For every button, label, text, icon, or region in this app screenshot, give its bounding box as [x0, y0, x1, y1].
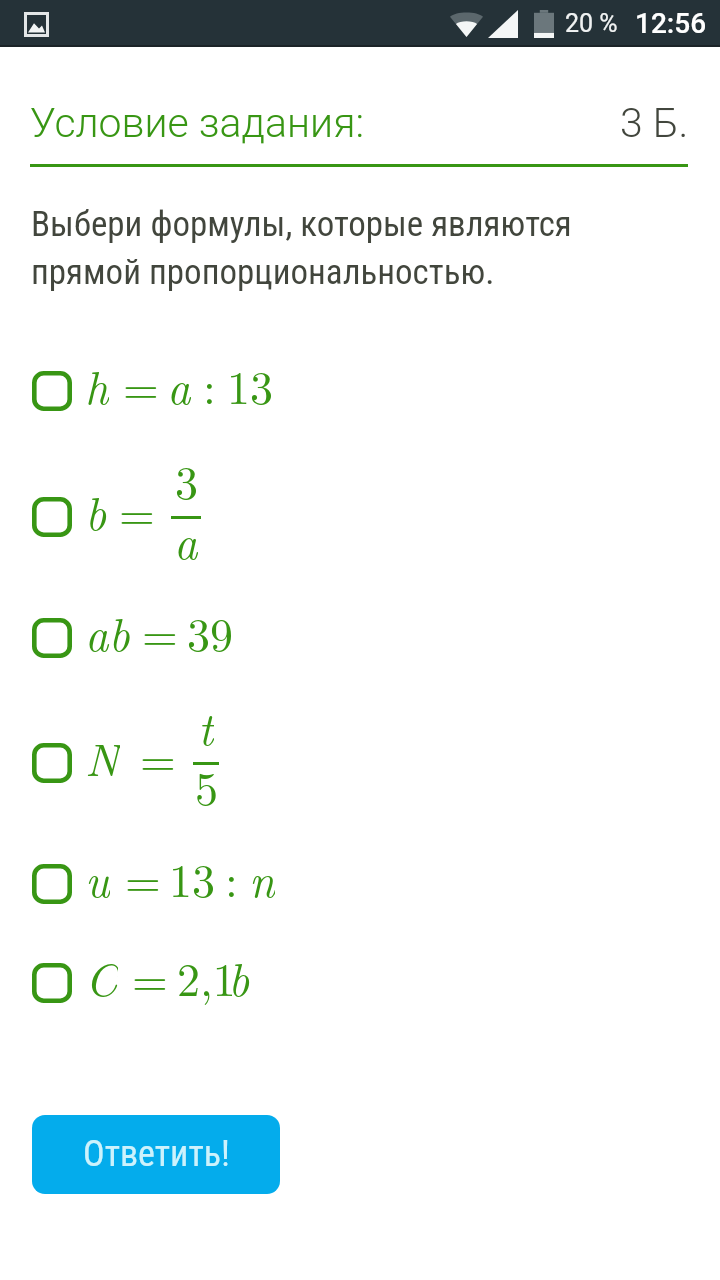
staticText: 3: [175, 447, 198, 511]
staticText: 3 Б.: [620, 99, 689, 147]
button[interactable]: Ответить!: [32, 1115, 280, 1194]
button[interactable]: ab: [0, 606, 720, 670]
staticText: a: [174, 507, 198, 571]
staticText: 20 %: [565, 9, 618, 38]
button[interactable]: u: [0, 852, 720, 916]
staticText: =: [132, 944, 168, 1008]
staticText: b: [228, 944, 250, 1008]
staticText: Выбери формулы, которые являются прямой …: [31, 204, 572, 293]
staticText: 39: [187, 599, 233, 663]
staticText: 12:56: [635, 7, 707, 40]
staticText: :: [225, 845, 238, 909]
staticText: =: [125, 845, 161, 909]
staticText: :: [203, 352, 216, 416]
staticText: =: [142, 599, 178, 663]
staticText: 13: [227, 352, 273, 416]
button[interactable]: N: [0, 731, 720, 795]
staticText: Условие задания:: [30, 99, 365, 147]
staticText: 5: [195, 753, 218, 817]
staticText: C: [85, 944, 118, 1008]
other: Screenshot: [24, 12, 49, 37]
staticText: =: [123, 352, 159, 416]
staticText: n: [249, 845, 275, 909]
button[interactable]: h: [0, 359, 720, 423]
staticText: a: [167, 352, 191, 416]
staticText: ab: [85, 599, 130, 663]
staticText: h: [85, 352, 109, 416]
staticText: t: [198, 693, 214, 757]
staticText: b: [85, 478, 107, 542]
other: Wi-Fi: [450, 11, 483, 37]
staticText: Ответить!: [83, 1133, 230, 1175]
staticText: N: [85, 724, 120, 788]
other: Battery 20 percent: [534, 10, 554, 38]
other: Mobile signal: [488, 10, 518, 38]
button[interactable]: C: [0, 951, 720, 1015]
staticText: 13: [169, 845, 215, 909]
staticText: =: [119, 478, 155, 542]
staticText: 2,1: [177, 944, 236, 1008]
button[interactable]: b: [0, 485, 720, 549]
staticText: =: [140, 724, 176, 788]
staticText: u: [85, 845, 110, 909]
